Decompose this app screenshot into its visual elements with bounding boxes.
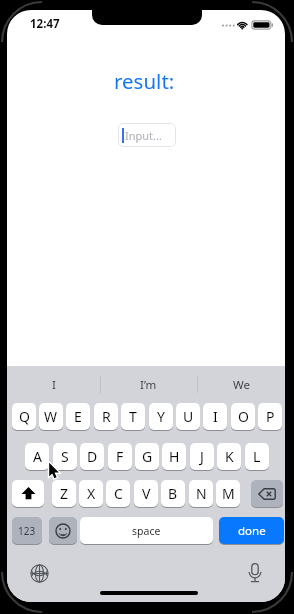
button[interactable]: S (53, 443, 77, 470)
staticText: U (183, 407, 194, 426)
button[interactable]: L (245, 443, 269, 470)
staticText: 12:47 (30, 16, 60, 32)
staticText: M (222, 484, 235, 503)
button[interactable]: done (219, 517, 284, 544)
button[interactable]: I (203, 403, 227, 430)
staticText: F (116, 447, 124, 466)
button[interactable] (12, 480, 44, 507)
staticText: S (61, 447, 69, 466)
button[interactable]: V (134, 480, 158, 507)
button[interactable] (49, 517, 77, 544)
staticText: done (238, 523, 266, 539)
button[interactable]: U (176, 403, 200, 430)
button[interactable]: X (79, 480, 103, 507)
staticText: Z (60, 484, 69, 503)
button[interactable]: Z (52, 480, 76, 507)
staticText: N (196, 484, 207, 503)
staticText: E (74, 407, 82, 426)
button[interactable]: I (7, 366, 100, 403)
staticText: Y (157, 407, 165, 426)
button[interactable]: Q (12, 403, 36, 430)
button[interactable]: I’m (100, 366, 197, 403)
button[interactable]: R (94, 403, 118, 430)
staticText: I (52, 377, 56, 393)
staticText: B (168, 484, 178, 503)
button[interactable]: M (216, 480, 240, 507)
button[interactable]: K (217, 443, 241, 470)
button[interactable]: N (189, 480, 213, 507)
staticText: space (132, 524, 161, 538)
staticText: R (102, 407, 111, 426)
staticText: Q (19, 407, 30, 426)
button[interactable]: space (80, 517, 213, 544)
button[interactable]: E (66, 403, 90, 430)
staticText: G (142, 447, 153, 466)
button[interactable]: P (258, 403, 282, 430)
button[interactable]: W (39, 403, 63, 430)
button[interactable]: Input... (118, 123, 176, 147)
staticText: We (233, 377, 250, 393)
staticText: result: (114, 67, 175, 95)
staticText: Input... (125, 128, 162, 143)
staticText: W (44, 407, 58, 426)
staticText: J (200, 447, 204, 466)
staticText: A (33, 447, 42, 466)
button[interactable]: H (162, 443, 186, 470)
button[interactable]: 123 (12, 517, 42, 544)
button[interactable]: J (190, 443, 214, 470)
button[interactable]: O (231, 403, 255, 430)
button[interactable]: We (197, 366, 285, 403)
button[interactable] (251, 480, 283, 507)
staticText: O (238, 407, 249, 426)
staticText: X (87, 484, 96, 503)
staticText: K (225, 447, 234, 466)
staticText: P (266, 407, 275, 426)
staticText: V (142, 484, 151, 503)
button[interactable]: F (108, 443, 132, 470)
staticText: I’m (140, 377, 157, 393)
button[interactable]: D (80, 443, 104, 470)
button[interactable]: A (25, 443, 49, 470)
button[interactable] (245, 561, 265, 585)
staticText: D (87, 447, 98, 466)
button[interactable]: Y (149, 403, 173, 430)
button[interactable]: G (135, 443, 159, 470)
button[interactable] (29, 563, 50, 584)
staticText: H (169, 447, 180, 466)
staticText: 123 (18, 524, 36, 538)
staticText: C (114, 484, 123, 503)
button[interactable]: T (121, 403, 145, 430)
button[interactable]: C (106, 480, 130, 507)
staticText: T (129, 407, 137, 426)
staticText: L (253, 447, 261, 466)
staticText: I (213, 407, 218, 426)
button[interactable]: B (161, 480, 185, 507)
